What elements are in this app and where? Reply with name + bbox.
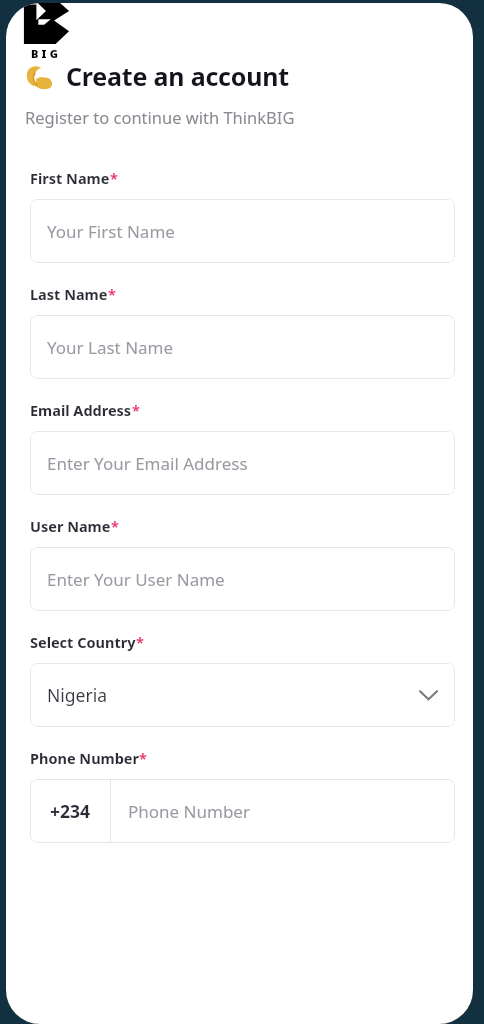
button[interactable]: Your Last Name xyxy=(30,315,455,379)
staticText: Your First Name xyxy=(47,220,175,243)
staticText: Enter Your Email Address xyxy=(47,452,248,475)
staticText: Register to continue with ThinkBIG xyxy=(25,106,295,128)
staticText: * xyxy=(111,516,119,536)
staticText: * xyxy=(108,284,116,304)
staticText: Email Address xyxy=(30,400,132,420)
staticText: * xyxy=(139,748,147,768)
staticText: Select Country xyxy=(30,632,136,652)
staticText: +234 xyxy=(50,799,91,823)
button[interactable]: Enter Your Email Address xyxy=(30,431,455,495)
staticText: Your Last Name xyxy=(47,336,174,359)
staticText: Nigeria xyxy=(47,683,108,707)
staticText: * xyxy=(110,168,118,188)
staticText: Create an account xyxy=(66,59,289,93)
staticText: User Name xyxy=(30,516,111,536)
other: BIG logo xyxy=(20,3,72,61)
staticText: Last Name xyxy=(30,284,108,304)
staticText: First Name xyxy=(30,168,110,188)
button[interactable]: Enter Your User Name xyxy=(30,547,455,611)
button[interactable]: Nigeria xyxy=(30,663,455,727)
button[interactable]: +234 xyxy=(30,779,455,843)
button[interactable]: Your First Name xyxy=(30,199,455,263)
staticText: Phone Number xyxy=(30,748,139,768)
staticText: Phone Number xyxy=(128,800,250,823)
staticText: * xyxy=(136,632,144,652)
staticText: * xyxy=(132,400,140,420)
staticText: BIG xyxy=(31,46,61,61)
staticText: Enter Your User Name xyxy=(47,568,225,591)
